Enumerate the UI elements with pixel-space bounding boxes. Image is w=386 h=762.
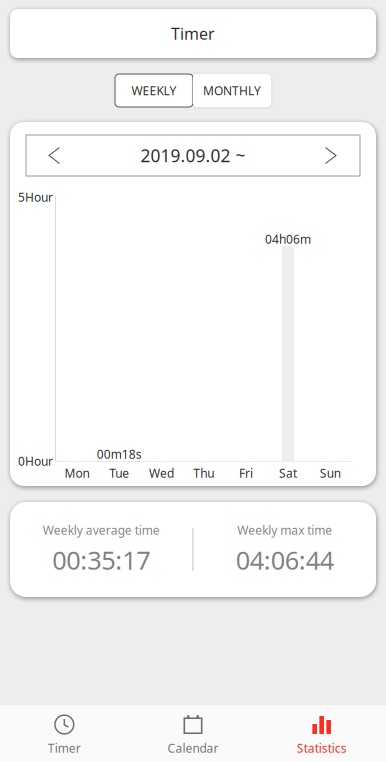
staticText: 04h06m xyxy=(265,231,311,247)
staticText: 04:06:44 xyxy=(236,543,334,577)
staticText: Calendar xyxy=(167,740,218,756)
staticText: 00:35:17 xyxy=(52,543,150,577)
button[interactable]: Next week xyxy=(318,135,360,176)
button[interactable]: Previous week xyxy=(26,135,68,176)
staticText: 00m18s xyxy=(97,446,142,462)
button[interactable]: Statistics xyxy=(257,705,386,762)
button[interactable]: Calendar xyxy=(129,705,257,762)
button[interactable]: Timer xyxy=(10,9,376,58)
staticText: Thu xyxy=(193,465,214,481)
staticText: 0Hour xyxy=(18,453,53,469)
button[interactable]: Timer xyxy=(0,705,129,762)
staticText: MONTHLY xyxy=(203,82,261,98)
staticText: Tue xyxy=(109,465,129,481)
button[interactable]: MONTHLY xyxy=(193,74,271,107)
staticText: WEEKLY xyxy=(131,82,176,98)
staticText: Fri xyxy=(239,465,253,481)
staticText: Weekly average time xyxy=(43,522,160,538)
staticText: Wed xyxy=(149,465,174,481)
staticText: Sun xyxy=(320,465,341,481)
staticText: Timer xyxy=(171,23,215,44)
staticText: Mon xyxy=(65,465,90,481)
staticText: Statistics xyxy=(297,740,347,756)
button[interactable]: WEEKLY xyxy=(115,74,193,107)
staticText: Weekly max time xyxy=(237,522,332,538)
staticText: 2019.09.02 ~ xyxy=(140,144,245,167)
staticText: 5Hour xyxy=(18,189,53,205)
staticText: Timer xyxy=(48,740,81,756)
staticText: Sat xyxy=(279,465,297,481)
